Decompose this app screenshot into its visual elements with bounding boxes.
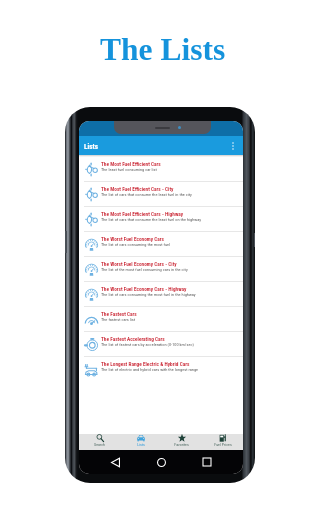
staticText: The list of cars that consume the least … (101, 192, 192, 197)
button[interactable]: The Fastest Accelerating Cars (79, 332, 243, 356)
staticText: The Fastest Accelerating Cars (101, 336, 165, 342)
button[interactable]: Favorites (161, 434, 202, 450)
button[interactable]: Back (105, 452, 125, 472)
staticText: The Worst Fuel Economy Cars - City (101, 261, 177, 267)
staticText: The list of cars that consume the least … (101, 217, 202, 222)
staticText: The Most Fuel Efficient Cars (101, 161, 161, 167)
staticText: The Worst Fuel Economy Cars - Highway (101, 286, 187, 292)
staticText: The list of the most fuel consuming cars… (101, 267, 188, 272)
button[interactable]: The Most Fuel Efficient Cars - City (79, 182, 243, 206)
staticText: The list of electric and hybrid cars wit… (101, 367, 199, 372)
button[interactable]: The Worst Fuel Economy Cars - Highway (79, 282, 243, 306)
button[interactable]: The Fastest Cars (79, 307, 243, 331)
staticText: Search (94, 442, 105, 447)
staticText: The list of cars consuming the most fuel… (101, 292, 196, 297)
button[interactable]: The Worst Fuel Economy Cars - City (79, 257, 243, 281)
staticText: The Worst Fuel Economy Cars (101, 236, 164, 242)
staticText: Fuel Prices (214, 442, 232, 447)
staticText: The Fastest Cars (101, 311, 137, 317)
button[interactable]: More options (226, 139, 239, 152)
staticText: The list of fastest cars by acceleration… (101, 342, 194, 347)
staticText: The Longest Range Electric & Hybrid Cars (101, 361, 190, 367)
staticText: The least fuel consuming car list (101, 167, 157, 172)
staticText: Lists (137, 442, 145, 447)
staticText: The Lists (100, 32, 226, 64)
staticText: The Most Fuel Efficient Cars - Highway (101, 211, 184, 217)
staticText: Lists (84, 142, 98, 150)
button[interactable]: The Longest Range Electric & Hybrid Cars (79, 357, 243, 381)
button[interactable]: The Most Fuel Efficient Cars (79, 157, 243, 181)
button[interactable]: Fuel Prices (202, 434, 243, 450)
staticText: The fastest cars list (101, 317, 136, 322)
button[interactable]: Recent apps (197, 452, 217, 472)
staticText: Favorites (174, 442, 189, 447)
button[interactable]: Home (151, 452, 171, 472)
button[interactable]: The Most Fuel Efficient Cars - Highway (79, 207, 243, 231)
button[interactable]: The Worst Fuel Economy Cars (79, 232, 243, 256)
button[interactable]: Search (79, 434, 120, 450)
staticText: The list of cars consuming the most fuel (101, 242, 171, 247)
button[interactable]: Lists (120, 434, 161, 450)
staticText: The Most Fuel Efficient Cars - City (101, 186, 174, 192)
